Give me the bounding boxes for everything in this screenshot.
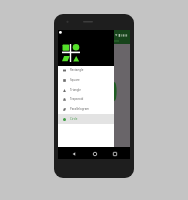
button[interactable]: Home xyxy=(89,148,100,159)
staticText: Triangle xyxy=(70,88,81,92)
button[interactable]: Rectangle xyxy=(58,65,114,75)
button[interactable]: Back xyxy=(68,148,79,159)
staticText: Circle xyxy=(70,117,78,121)
staticText: Parallelogram xyxy=(70,107,89,111)
button[interactable]: Triangle xyxy=(58,85,114,95)
button[interactable]: Circle xyxy=(58,114,114,124)
button[interactable]: Trapezoid xyxy=(58,94,114,104)
button[interactable]: Square xyxy=(58,75,114,85)
button[interactable]: Recent apps xyxy=(109,148,120,159)
staticText: Square xyxy=(70,78,80,82)
button[interactable]: Parallelogram xyxy=(58,104,114,114)
staticText: Trapezoid xyxy=(70,97,84,101)
staticText: Rectangle xyxy=(70,68,84,72)
